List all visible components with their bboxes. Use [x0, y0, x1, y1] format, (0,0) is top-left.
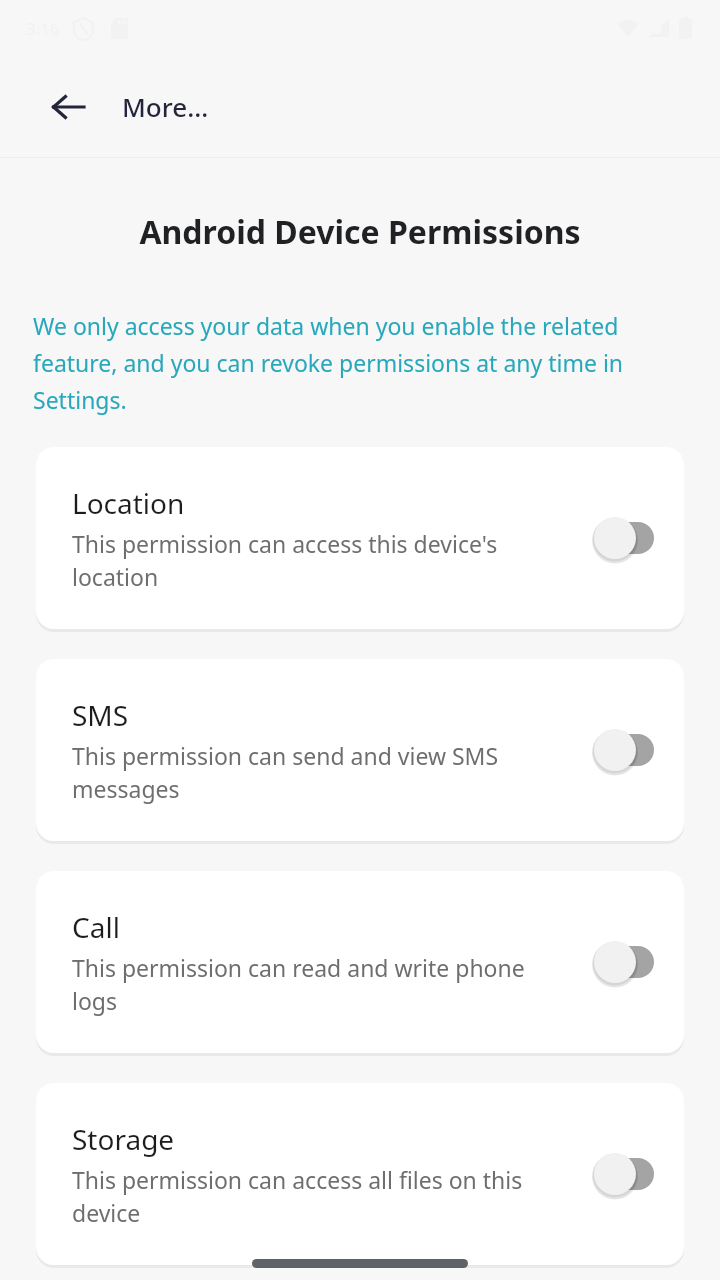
button[interactable]: SMS — [36, 659, 684, 841]
button[interactable]: Toggle permission — [584, 936, 660, 988]
button[interactable]: Back — [40, 79, 96, 135]
staticText: This permission can access this device's… — [72, 528, 574, 593]
staticText: Android Device Permissions — [0, 210, 720, 254]
staticText: SMS — [72, 696, 129, 734]
staticText: This permission can send and view SMS me… — [72, 740, 574, 805]
staticText: This permission can read and write phone… — [72, 952, 574, 1017]
button[interactable]: Location — [36, 447, 684, 629]
button[interactable]: Storage — [36, 1083, 684, 1265]
staticText: More… — [122, 89, 209, 124]
staticText: Call — [72, 908, 120, 946]
staticText: Location — [72, 484, 185, 522]
button[interactable]: Toggle permission — [584, 1148, 660, 1200]
staticText: We only access your data when you enable… — [33, 310, 680, 416]
button[interactable]: Call — [36, 871, 684, 1053]
button[interactable]: Toggle permission — [584, 512, 660, 564]
staticText: This permission can access all files on … — [72, 1164, 574, 1229]
button[interactable]: Toggle permission — [584, 724, 660, 776]
staticText: Storage — [72, 1120, 175, 1158]
